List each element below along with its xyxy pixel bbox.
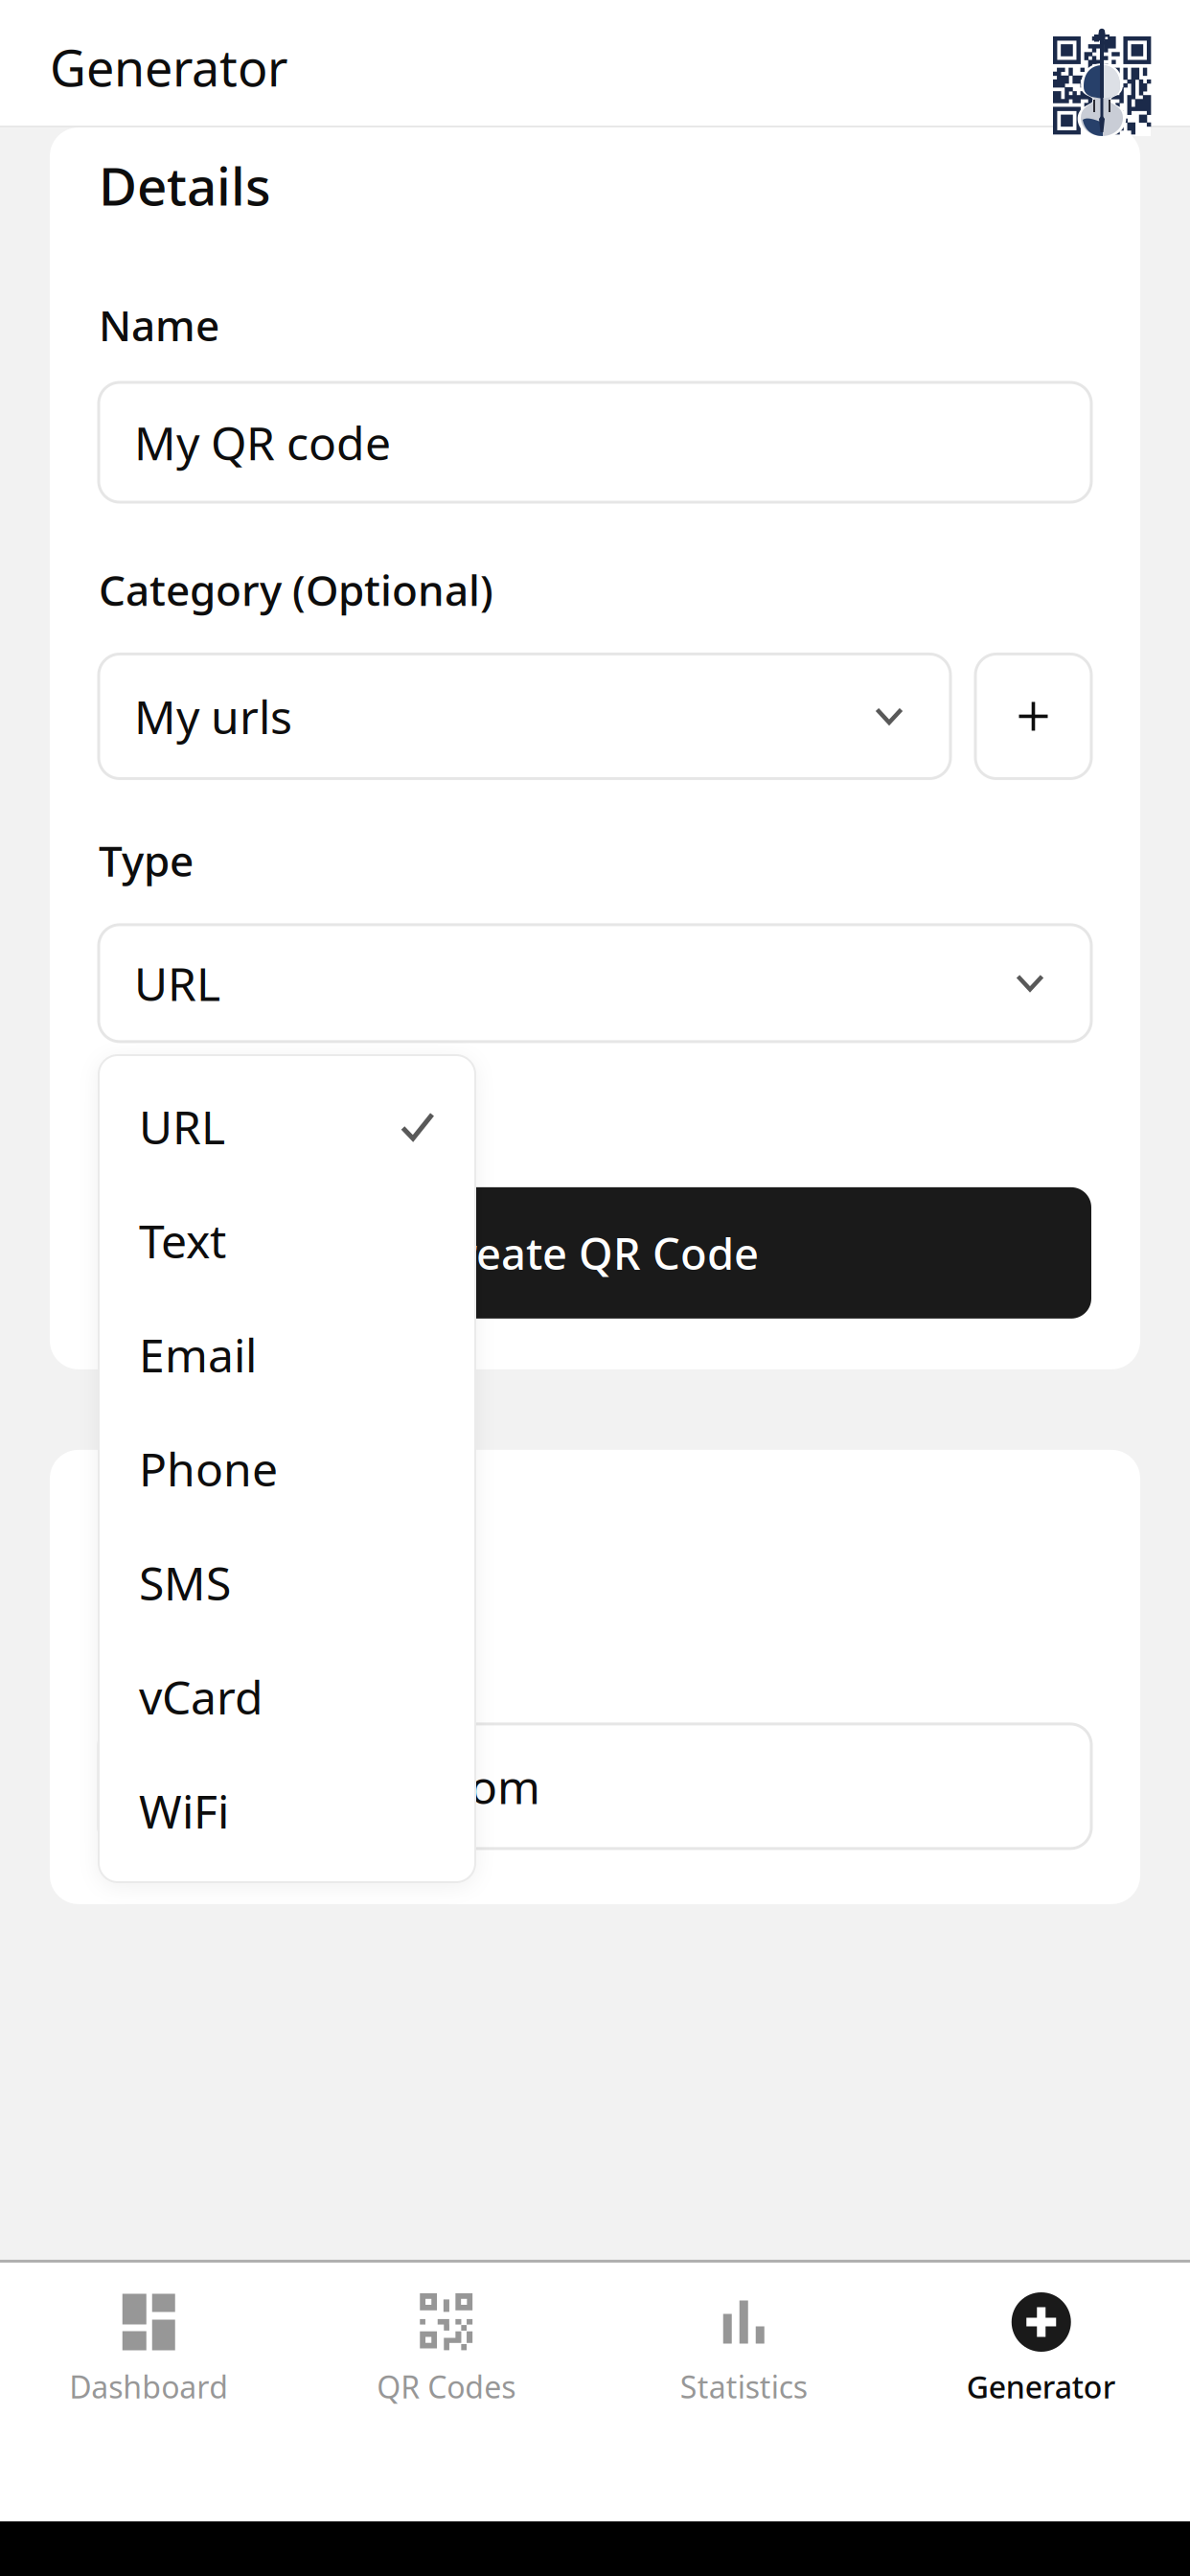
button[interactable]: Statistics <box>595 2263 892 2521</box>
staticText: vCard <box>139 1666 263 1727</box>
staticText: Create QR Code <box>431 1224 759 1282</box>
button[interactable]: Text <box>99 1184 475 1298</box>
button[interactable]: SMS <box>99 1526 475 1640</box>
button[interactable]: Create QR Code <box>99 1187 1091 1319</box>
button[interactable]: QR Codes <box>297 2263 595 2521</box>
button[interactable]: URL <box>99 1069 475 1184</box>
staticText: My QR code <box>134 412 391 473</box>
staticText: WiFi <box>139 1780 229 1841</box>
staticText: URL <box>99 1628 178 1684</box>
button[interactable]: Phone <box>99 1412 475 1526</box>
button[interactable]: App logo <box>1053 29 1151 136</box>
staticText: Generator <box>967 2366 1116 2407</box>
staticText: Statistics <box>680 2366 808 2407</box>
staticText: Category (Optional) <box>99 562 493 618</box>
staticText: Details <box>99 150 271 220</box>
staticText: Type <box>99 832 194 888</box>
staticText: Text <box>139 1210 226 1271</box>
staticText: Generator <box>50 34 287 100</box>
staticText: QR Codes <box>377 2366 516 2407</box>
button[interactable]: My QR code <box>99 382 1091 502</box>
button[interactable]: vCard <box>99 1640 475 1754</box>
staticText: Dashboard <box>69 2366 228 2407</box>
staticText: URL <box>134 953 220 1014</box>
staticText: Phone <box>139 1438 278 1499</box>
staticText: https://mysite.com <box>134 1756 540 1817</box>
staticText: Name <box>99 297 219 353</box>
button[interactable]: Add category <box>975 654 1091 779</box>
button[interactable]: My urls <box>99 654 950 779</box>
button[interactable]: Dashboard <box>0 2263 297 2521</box>
button[interactable]: https://mysite.com <box>99 1724 1091 1849</box>
staticText: SMS <box>139 1552 231 1613</box>
button[interactable]: Email <box>99 1298 475 1412</box>
staticText: Content <box>99 1481 299 1550</box>
button[interactable]: WiFi <box>99 1754 475 1868</box>
button[interactable]: URL <box>99 925 1091 1042</box>
staticText: Email <box>139 1324 257 1385</box>
staticText: My urls <box>134 686 292 747</box>
staticText: URL <box>139 1096 225 1157</box>
button[interactable]: Generator <box>892 2263 1190 2521</box>
